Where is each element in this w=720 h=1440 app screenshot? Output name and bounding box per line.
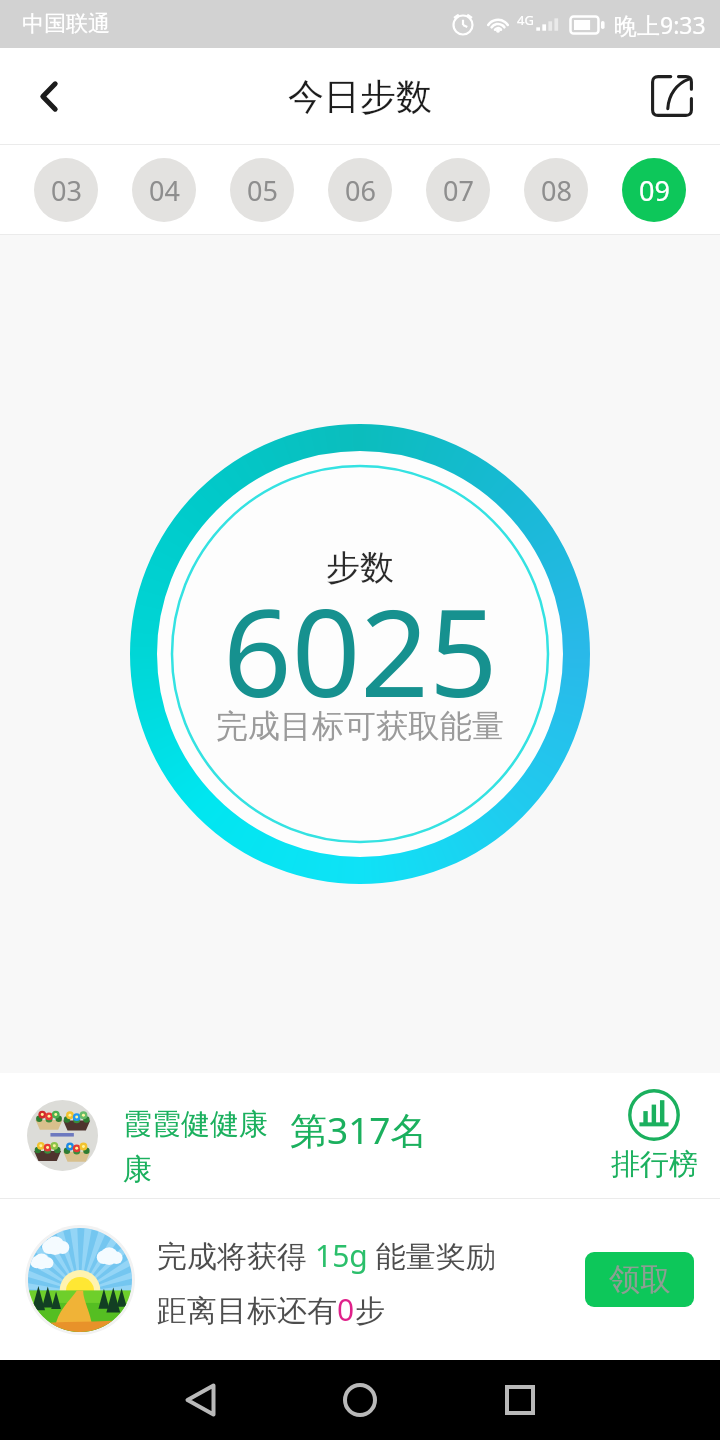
- staticText: 08: [541, 172, 572, 209]
- staticText: 距离目标还有: [157, 1292, 337, 1330]
- staticText: 03: [51, 172, 82, 209]
- button[interactable]: 08: [524, 158, 588, 222]
- button[interactable]: Recents: [480, 1360, 560, 1440]
- staticText: 06: [345, 172, 376, 209]
- staticText: 中国联通: [22, 10, 110, 38]
- button[interactable]: 霞霞健健康: [0, 1073, 720, 1198]
- staticText: 能量奖励: [368, 1235, 496, 1276]
- staticText: 05: [247, 172, 278, 209]
- staticText: 晚上9:33: [614, 9, 706, 40]
- staticText: 步: [355, 1292, 385, 1330]
- button[interactable]: 04: [132, 158, 196, 222]
- button[interactable]: 05: [230, 158, 294, 222]
- staticText: 07: [443, 172, 474, 209]
- button[interactable]: 07: [426, 158, 490, 222]
- staticText: 完成将获得: [157, 1235, 315, 1276]
- staticText: 完成目标可获取能量: [216, 706, 504, 746]
- staticText: 步数: [326, 546, 394, 589]
- button[interactable]: Back: [160, 1360, 240, 1440]
- staticText: 霞霞健健康: [123, 1106, 268, 1143]
- button[interactable]: 03: [34, 158, 98, 222]
- staticText: 第317名: [290, 1104, 428, 1155]
- staticText: 排行榜: [611, 1146, 698, 1183]
- staticText: 今日步数: [288, 74, 432, 119]
- button[interactable]: Share: [624, 48, 720, 144]
- staticText: 0: [337, 1289, 355, 1330]
- button[interactable]: 09: [622, 158, 686, 222]
- staticText: 4G: [517, 11, 534, 29]
- staticText: 09: [639, 172, 670, 209]
- staticText: 04: [149, 172, 180, 209]
- button[interactable]: 领取: [585, 1252, 694, 1307]
- button[interactable]: 06: [328, 158, 392, 222]
- staticText: 领取: [609, 1260, 671, 1299]
- staticText: 15g: [315, 1235, 368, 1276]
- button[interactable]: Home: [320, 1360, 400, 1440]
- staticText: 6025: [223, 569, 498, 732]
- staticText: 康: [123, 1151, 152, 1188]
- button[interactable]: Back: [0, 48, 96, 144]
- button[interactable]: 排行榜: [594, 1089, 714, 1183]
